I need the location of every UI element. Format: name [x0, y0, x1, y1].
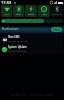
button[interactable]: Sync	[38, 5, 50, 17]
staticText: Hey, are we still on?	[8, 40, 29, 43]
staticText: Sync	[42, 13, 47, 16]
staticText: System Update	[8, 45, 27, 49]
button[interactable]: Brightness	[1, 19, 63, 23]
button[interactable]: Data	[13, 5, 24, 17]
staticText: New SMS	[8, 35, 20, 39]
staticText: Tap to install now	[8, 50, 26, 53]
button[interactable]: Clear	[51, 27, 62, 32]
staticText: 17:53	[1, 0, 12, 5]
staticText: Clear	[53, 28, 60, 32]
button[interactable]: System Update	[1, 44, 63, 54]
staticText: Notifications	[2, 27, 19, 31]
button[interactable]: Wi-Fi	[1, 5, 12, 17]
staticText: Bluetooth	[52, 13, 62, 16]
staticText: Data	[16, 13, 21, 16]
button[interactable]: Bluetooth	[51, 5, 63, 17]
button[interactable]: Torch	[25, 5, 37, 17]
staticText: Torch	[28, 13, 34, 16]
button[interactable]: New SMS	[1, 34, 63, 44]
staticText: No SIM card — emergency calls only	[10, 93, 55, 97]
staticText: Wi-Fi	[4, 13, 9, 16]
